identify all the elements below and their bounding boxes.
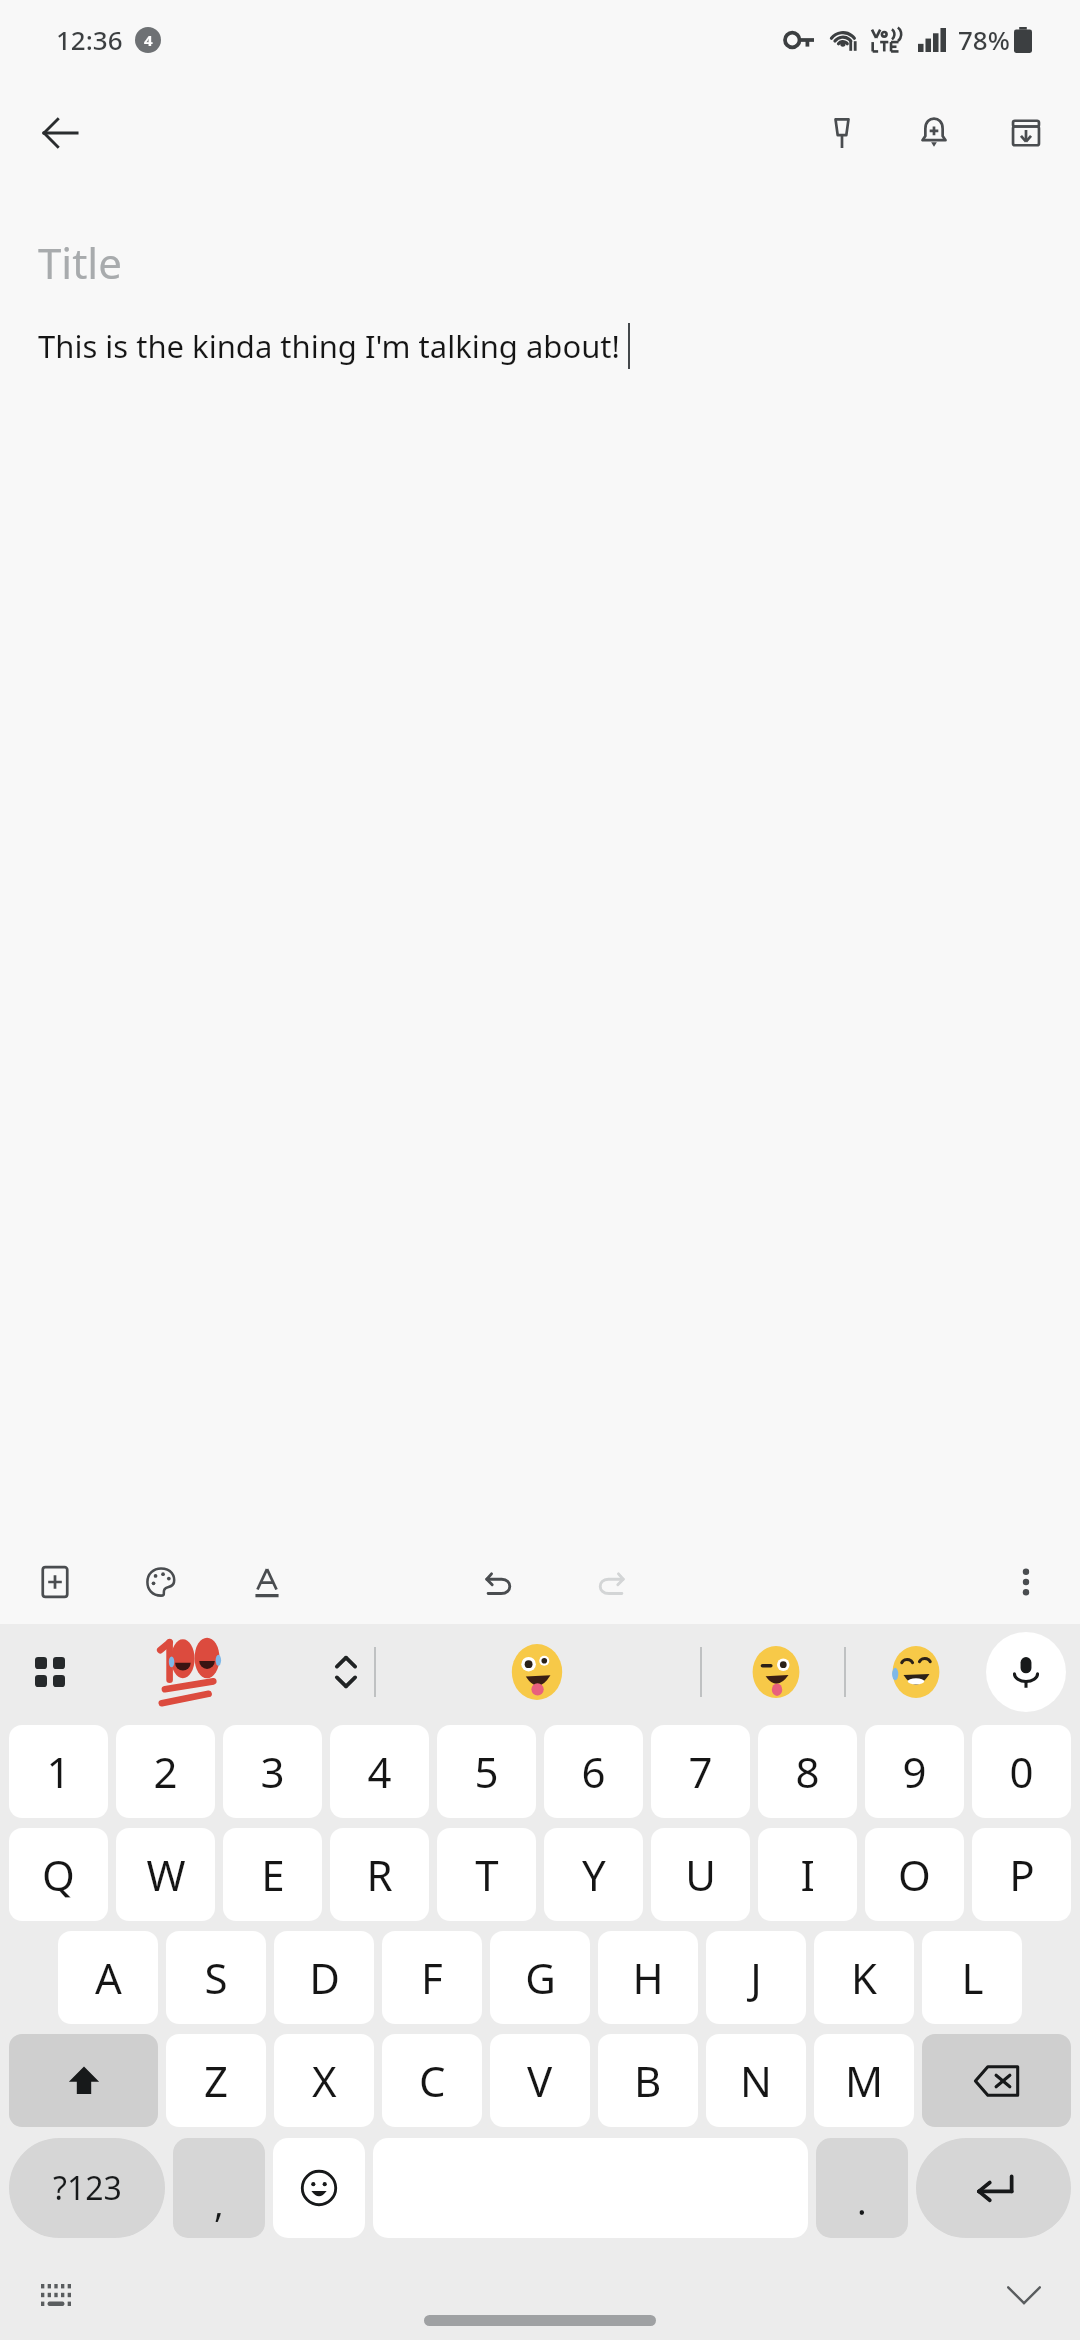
button[interactable]: Add [24, 1551, 86, 1613]
staticText: D [309, 1949, 340, 2006]
staticText: 4 [144, 30, 153, 50]
button[interactable]: Y [544, 1828, 643, 1921]
button[interactable]: P [972, 1828, 1071, 1921]
staticText: V [527, 2052, 553, 2109]
button[interactable]: T [437, 1828, 536, 1921]
button[interactable]: J [706, 1931, 806, 2024]
button[interactable]: 1 [9, 1725, 108, 1818]
button[interactable]: V [490, 2034, 590, 2127]
staticText: L [961, 1949, 984, 2006]
button[interactable]: C [382, 2034, 482, 2127]
staticText: 6 [581, 1743, 606, 1800]
button[interactable]: Change keyboard [24, 2263, 88, 2327]
staticText: 78% [958, 22, 1010, 57]
button[interactable]: Undo [468, 1551, 530, 1613]
button[interactable]: X [274, 2034, 374, 2127]
button[interactable]: Title [38, 234, 1042, 291]
staticText: X [312, 2052, 337, 2109]
button[interactable]: Back [22, 95, 98, 171]
button[interactable]: S [166, 1931, 266, 2024]
staticText: This is the kinda thing I'm talking abou… [38, 325, 620, 367]
button[interactable]: 2 [116, 1725, 215, 1818]
button[interactable]: U [651, 1828, 750, 1921]
button[interactable]: Emoji [273, 2138, 365, 2238]
button[interactable]: K [814, 1931, 914, 2024]
staticText: ?123 [53, 2166, 122, 2210]
button[interactable]: Text format [236, 1551, 298, 1613]
button[interactable]: F [382, 1931, 482, 2024]
button[interactable] [880, 1636, 952, 1708]
button[interactable]: L [922, 1931, 1022, 2024]
staticText: , [214, 2179, 224, 2228]
staticText: H [632, 1949, 664, 2006]
button[interactable]: M [814, 2034, 914, 2127]
button[interactable]: Redo [580, 1551, 642, 1613]
staticText: 1 [46, 1743, 71, 1800]
staticText: B [634, 2052, 662, 2109]
staticText: 3 [260, 1743, 285, 1800]
button[interactable]: N [706, 2034, 806, 2127]
button[interactable]: Expand suggestions [318, 1644, 374, 1700]
staticText: K [851, 1949, 877, 2006]
staticText: Title [38, 234, 122, 291]
staticText: 12:36 [56, 22, 123, 57]
staticText: . [857, 2177, 867, 2226]
button[interactable]: Voice input [986, 1632, 1066, 1712]
button[interactable]: Shift [9, 2034, 158, 2127]
staticText: 0 [1009, 1743, 1034, 1800]
button[interactable]: H [598, 1931, 698, 2024]
button[interactable]: 5 [437, 1725, 536, 1818]
staticText: M [845, 2052, 884, 2109]
button[interactable]: B [598, 2034, 698, 2127]
button[interactable]: . [816, 2138, 908, 2238]
button[interactable] [148, 1627, 238, 1717]
button[interactable]: 7 [651, 1725, 750, 1818]
button[interactable]: 9 [865, 1725, 964, 1818]
button[interactable]: O [865, 1828, 964, 1921]
staticText: F [421, 1949, 443, 2006]
button[interactable]: Backspace [922, 2034, 1071, 2127]
staticText: E [261, 1846, 285, 1903]
button[interactable]: ?123 [9, 2138, 165, 2238]
staticText: I [800, 1846, 815, 1903]
button[interactable]: , [173, 2138, 265, 2238]
staticText: C [419, 2052, 446, 2109]
button[interactable]: More options [994, 1550, 1058, 1614]
staticText: 9 [902, 1743, 927, 1800]
button[interactable]: Add reminder [898, 97, 970, 169]
button[interactable]: A [58, 1931, 158, 2024]
button[interactable]: G [490, 1931, 590, 2024]
staticText: U [685, 1846, 716, 1903]
staticText: 7 [688, 1743, 713, 1800]
button[interactable]: Hide keyboard [992, 2263, 1056, 2327]
button[interactable]: 0 [972, 1725, 1071, 1818]
staticText: R [366, 1846, 393, 1903]
button[interactable] [500, 1635, 574, 1709]
button[interactable]: I [758, 1828, 857, 1921]
button[interactable]: 8 [758, 1725, 857, 1818]
staticText: 5 [474, 1743, 499, 1800]
staticText: W [146, 1846, 186, 1903]
button[interactable]: Enter [916, 2138, 1071, 2238]
staticText: P [1009, 1846, 1035, 1903]
button[interactable]: W [116, 1828, 215, 1921]
button[interactable]: Archive [990, 97, 1062, 169]
button[interactable]: 3 [223, 1725, 322, 1818]
button[interactable]: Toolbar [18, 1640, 82, 1704]
staticText: 2 [153, 1743, 178, 1800]
button[interactable]: E [223, 1828, 322, 1921]
button[interactable] [740, 1636, 812, 1708]
staticText: J [750, 1949, 762, 2006]
button[interactable]: This is the kinda thing I'm talking abou… [38, 323, 1042, 369]
button[interactable]: D [274, 1931, 374, 2024]
button[interactable]: Q [9, 1828, 108, 1921]
button[interactable]: Z [166, 2034, 266, 2127]
staticText: T [475, 1846, 499, 1903]
staticText: Y [582, 1846, 606, 1903]
button[interactable]: R [330, 1828, 429, 1921]
button[interactable]: Colour [130, 1551, 192, 1613]
button[interactable]: 6 [544, 1725, 643, 1818]
button[interactable]: Pin note [806, 97, 878, 169]
button[interactable]: 4 [330, 1725, 429, 1818]
